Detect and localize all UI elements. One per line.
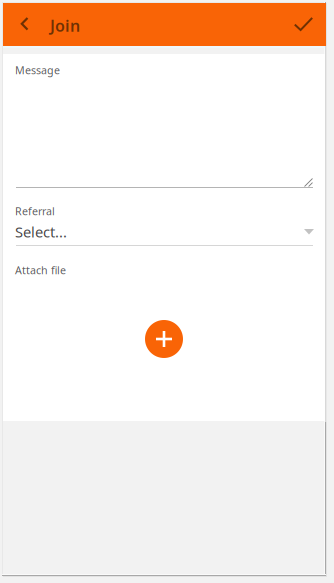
button[interactable]: Join xyxy=(50,3,86,46)
staticText: Attach file xyxy=(15,263,66,277)
button[interactable]: Select... xyxy=(3,219,325,246)
staticText: Select... xyxy=(15,222,67,241)
button[interactable]: Submit xyxy=(286,3,326,46)
staticText: Referral xyxy=(15,204,55,218)
staticText: Message xyxy=(15,63,60,77)
button[interactable]: Back xyxy=(3,3,39,46)
button[interactable]: Add attachment xyxy=(145,320,183,358)
staticText: Join xyxy=(50,15,80,36)
